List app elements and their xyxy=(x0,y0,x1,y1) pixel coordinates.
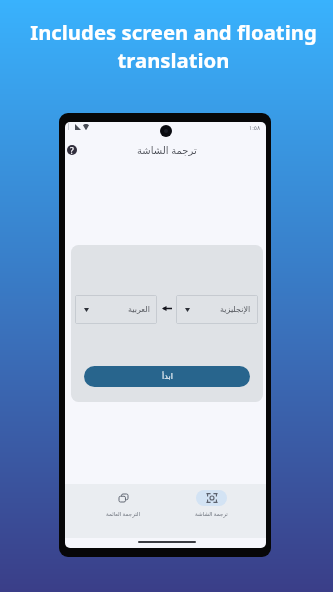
button[interactable]: العربية xyxy=(75,295,157,324)
staticText: الترجمة العائمة xyxy=(106,510,141,517)
button[interactable]: الترجمة العائمة xyxy=(89,484,157,538)
staticText: Includes screen and floating translation xyxy=(21,18,326,74)
button[interactable]: Help xyxy=(65,139,83,161)
button[interactable]: ابدأ xyxy=(84,366,250,387)
staticText: ١:٥٨ xyxy=(249,124,261,132)
staticText: ابدأ xyxy=(162,372,173,381)
button[interactable]: الإنجليزية xyxy=(176,295,258,324)
button[interactable]: ترجمة الشاشة xyxy=(177,484,245,538)
staticText: العربية xyxy=(128,305,150,314)
staticText: ترجمة الشاشة xyxy=(195,510,228,517)
staticText: الإنجليزية xyxy=(220,305,251,314)
staticText: ? xyxy=(70,145,74,155)
staticText: ترجمة الشاشة xyxy=(137,143,197,157)
